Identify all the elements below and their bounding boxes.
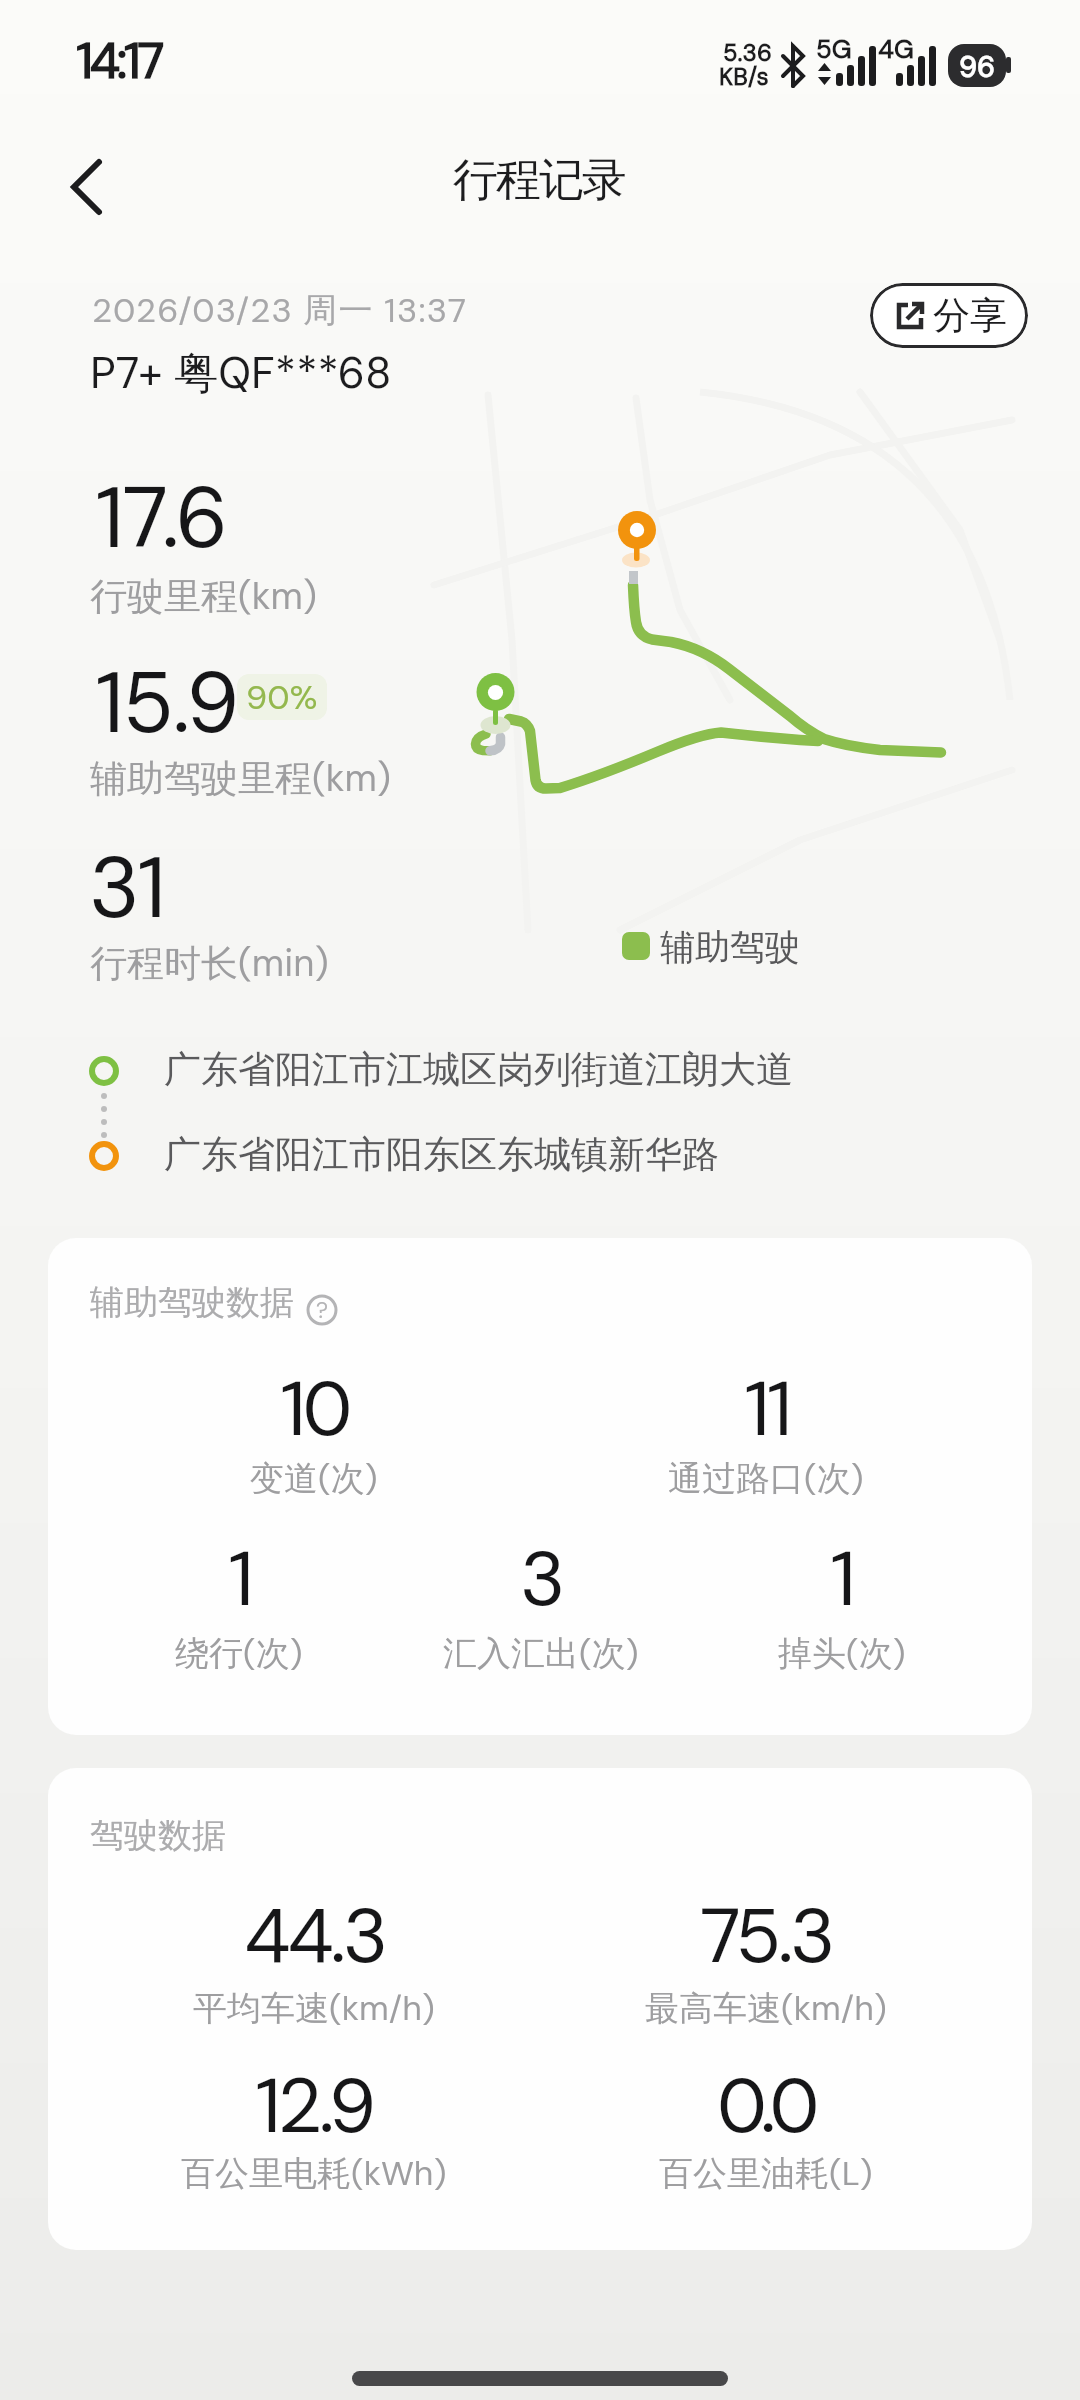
staticText: 汇入汇出(次)	[443, 1631, 639, 1675]
staticText: 12.9	[255, 2057, 373, 2156]
staticText: 驾驶数据	[90, 1814, 226, 1857]
button[interactable]: ?	[306, 1294, 338, 1326]
staticText: 广东省阳江市江城区岗列街道江朗大道	[164, 1046, 793, 1093]
staticText: 分享	[933, 292, 1007, 339]
staticText: 14:17	[76, 28, 161, 93]
staticText: 0.0	[717, 2057, 816, 2156]
button[interactable]: 分享	[870, 283, 1028, 348]
staticText: 5G	[816, 32, 852, 66]
button[interactable]	[48, 150, 124, 226]
button[interactable]: 辅助驾驶数据	[48, 1238, 1032, 1735]
staticText: 90%	[246, 675, 318, 719]
staticText: ?	[316, 1296, 329, 1325]
staticText: 4G	[878, 32, 914, 66]
staticText: 75.3	[700, 1887, 832, 1986]
staticText: 96	[959, 48, 996, 86]
staticText: 绕行(次)	[175, 1631, 303, 1675]
staticText: 行程时长(min)	[90, 939, 329, 987]
staticText: KB/s	[719, 61, 769, 92]
staticText: 平均车速(km/h)	[193, 1986, 435, 2030]
staticText: 行程记录	[454, 152, 626, 209]
staticText: 辅助驾驶里程(km)	[90, 754, 391, 802]
staticText: 广东省阳江市阳东区东城镇新华路	[164, 1131, 719, 1178]
staticText: 掉头(次)	[778, 1631, 906, 1675]
staticText: 通过路口(次)	[668, 1456, 864, 1500]
staticText: 辅助驾驶数据	[90, 1281, 294, 1324]
staticText: 5.36	[723, 37, 772, 68]
staticText: 1	[830, 1530, 853, 1629]
staticText: 1	[228, 1530, 251, 1629]
staticText: 百公里油耗(L)	[659, 2151, 873, 2195]
staticText: 10	[280, 1360, 349, 1459]
staticText: 44.3	[244, 1887, 385, 1986]
staticText: 行驶里程(km)	[90, 572, 317, 620]
staticText: 辅助驾驶	[660, 925, 800, 969]
staticText: 最高车速(km/h)	[645, 1986, 887, 2030]
button[interactable]: 驾驶数据	[48, 1768, 1032, 2250]
staticText: 31	[89, 833, 165, 944]
staticText: 15.9	[95, 648, 238, 759]
staticText: 2026/03/23 周一 13:37	[92, 288, 468, 332]
staticText: P7+ 粤QF***68	[90, 344, 392, 401]
staticText: 百公里电耗(kWh)	[181, 2151, 447, 2195]
staticText: 变道(次)	[250, 1456, 378, 1500]
staticText: 11	[744, 1360, 789, 1459]
staticText: 17.6	[95, 463, 227, 574]
staticText: 3	[520, 1530, 562, 1629]
